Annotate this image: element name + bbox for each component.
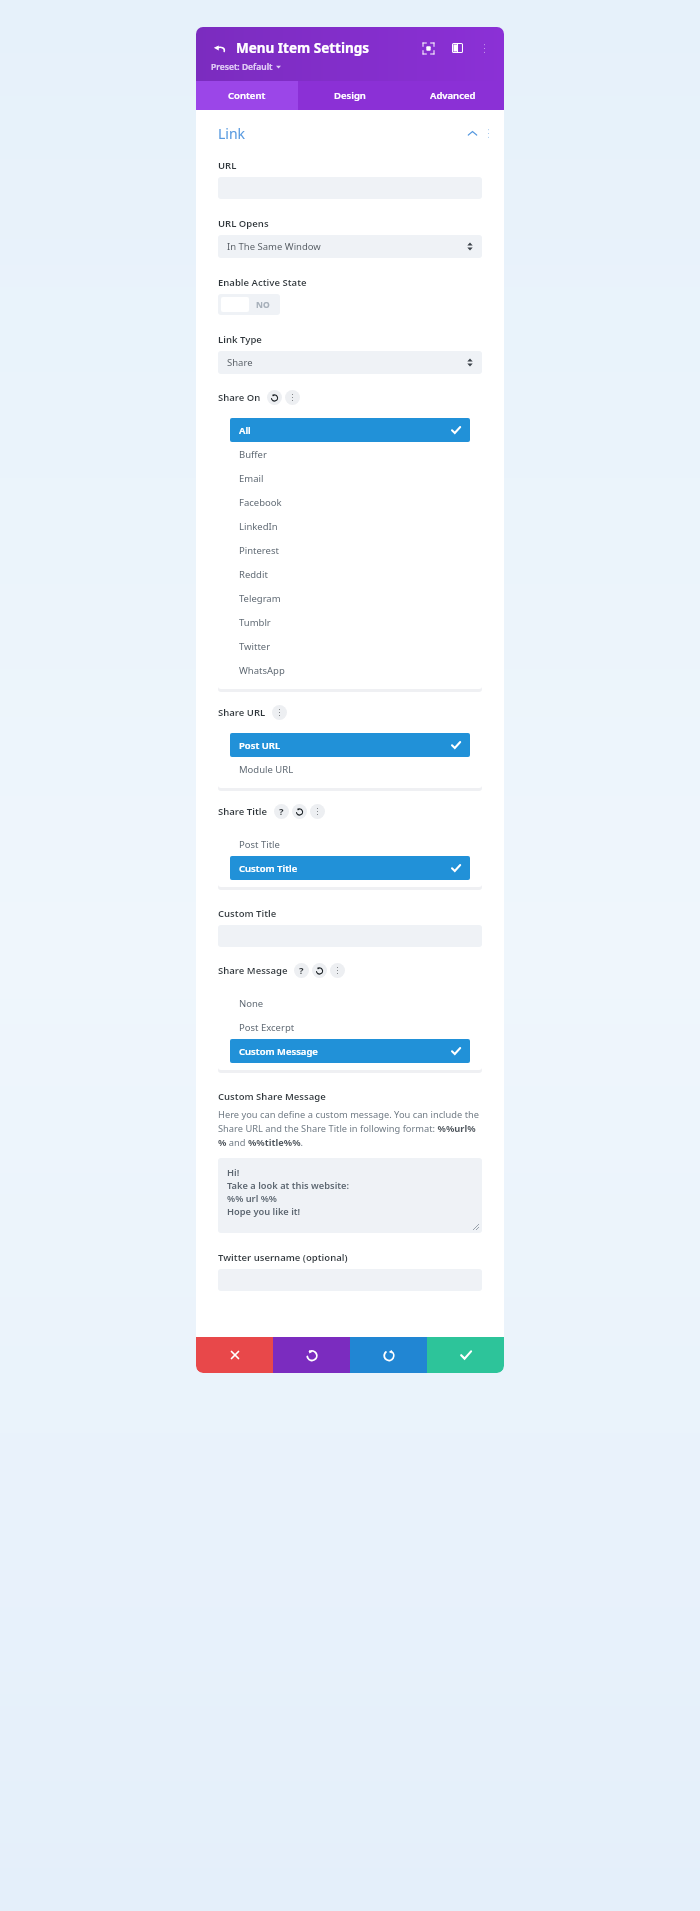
staticText: Menu Item Settings (236, 39, 418, 57)
staticText: ? (299, 964, 304, 977)
staticText: Hi! (227, 1166, 240, 1179)
staticText: Facebook (239, 496, 461, 509)
staticText: None (239, 997, 461, 1010)
button[interactable]: Post Excerpt (230, 1015, 470, 1039)
button[interactable]: Advanced (401, 81, 504, 110)
button[interactable]: More options (474, 38, 494, 58)
staticText: Reddit (239, 568, 461, 581)
staticText: Custom Title (218, 907, 277, 920)
staticText: Pinterest (239, 544, 461, 557)
staticText: Twitter username (optional) (218, 1251, 348, 1264)
staticText: Module URL (239, 763, 461, 776)
button[interactable]: Buffer (230, 442, 470, 466)
staticText: ? (279, 805, 284, 818)
button[interactable]: Telegram (230, 586, 470, 610)
staticText: URL Opens (218, 217, 269, 230)
staticText: Here you can define a custom message. Yo… (218, 1108, 482, 1149)
button[interactable]: Help (274, 804, 289, 819)
button[interactable]: Redo (350, 1337, 427, 1373)
button[interactable]: Reset (267, 390, 282, 405)
button[interactable]: Content (196, 81, 298, 110)
staticText: NO (256, 299, 270, 311)
button[interactable]: Back (210, 39, 228, 57)
button[interactable]: Reset (312, 963, 327, 978)
staticText: Telegram (239, 592, 461, 605)
staticText: Advanced (430, 89, 476, 102)
staticText: Link Type (218, 333, 262, 346)
staticText: Content (228, 89, 266, 102)
staticText: In The Same Window (227, 240, 467, 253)
button[interactable]: Focus (418, 38, 438, 58)
staticText: Buffer (239, 448, 461, 461)
button[interactable]: Cancel (196, 1337, 273, 1373)
button[interactable]: Preset: Default (211, 61, 281, 73)
button[interactable]: Options (330, 963, 345, 978)
button[interactable]: Custom Title (230, 856, 470, 880)
button[interactable]: Options (310, 804, 325, 819)
button[interactable]: In The Same Window (218, 235, 482, 258)
staticText: Link (218, 124, 467, 143)
button[interactable]: LinkedIn (230, 514, 470, 538)
staticText: Share Message (218, 964, 288, 977)
button[interactable]: Link (218, 124, 490, 143)
button[interactable]: Options (285, 390, 300, 405)
staticText: Custom Title (239, 862, 451, 875)
button[interactable]: None (230, 991, 470, 1015)
button[interactable]: Module URL (230, 757, 470, 781)
staticText: Email (239, 472, 461, 485)
button[interactable]: Pinterest (230, 538, 470, 562)
button[interactable]: Options (272, 705, 287, 720)
button[interactable]: Custom Message (230, 1039, 470, 1063)
button[interactable]: Post Title (230, 832, 470, 856)
button[interactable]: Help (294, 963, 309, 978)
button[interactable]: Hi! (218, 1158, 482, 1233)
staticText: Post Title (239, 838, 461, 851)
staticText: Preset: Default (211, 61, 273, 73)
button[interactable]: NO (218, 294, 280, 315)
staticText: Hope you like it! (227, 1205, 301, 1218)
staticText: Share (227, 356, 467, 369)
button[interactable]: All (230, 418, 470, 442)
staticText: WhatsApp (239, 664, 461, 677)
staticText: %% url %% (227, 1192, 277, 1205)
staticText: Custom Message (239, 1045, 451, 1058)
button[interactable]: Save (427, 1337, 504, 1373)
button[interactable]: Design (298, 81, 401, 110)
staticText: URL (218, 159, 237, 172)
staticText: Share On (218, 391, 261, 404)
staticText: Custom Share Message (218, 1090, 326, 1103)
staticText: Share Title (218, 805, 268, 818)
staticText: Take a look at this website: (227, 1179, 350, 1192)
staticText: Twitter (239, 640, 461, 653)
staticText: Post Excerpt (239, 1021, 461, 1034)
staticText: Design (334, 89, 366, 102)
button[interactable]: Layout (447, 38, 467, 58)
button[interactable]: Tumblr (230, 610, 470, 634)
button[interactable]: Facebook (230, 490, 470, 514)
button[interactable]: Share (218, 351, 482, 374)
staticText: Post URL (239, 739, 451, 752)
staticText: Share URL (218, 706, 266, 719)
staticText: Tumblr (239, 616, 461, 629)
button[interactable]: Post URL (230, 733, 470, 757)
staticText: All (239, 424, 451, 437)
button[interactable]: Twitter (230, 634, 470, 658)
button[interactable]: Undo (273, 1337, 350, 1373)
staticText: Enable Active State (218, 276, 307, 289)
button[interactable]: Reset (292, 804, 307, 819)
button[interactable]: WhatsApp (230, 658, 470, 682)
button[interactable]: Reddit (230, 562, 470, 586)
button[interactable]: Email (230, 466, 470, 490)
staticText: LinkedIn (239, 520, 461, 533)
